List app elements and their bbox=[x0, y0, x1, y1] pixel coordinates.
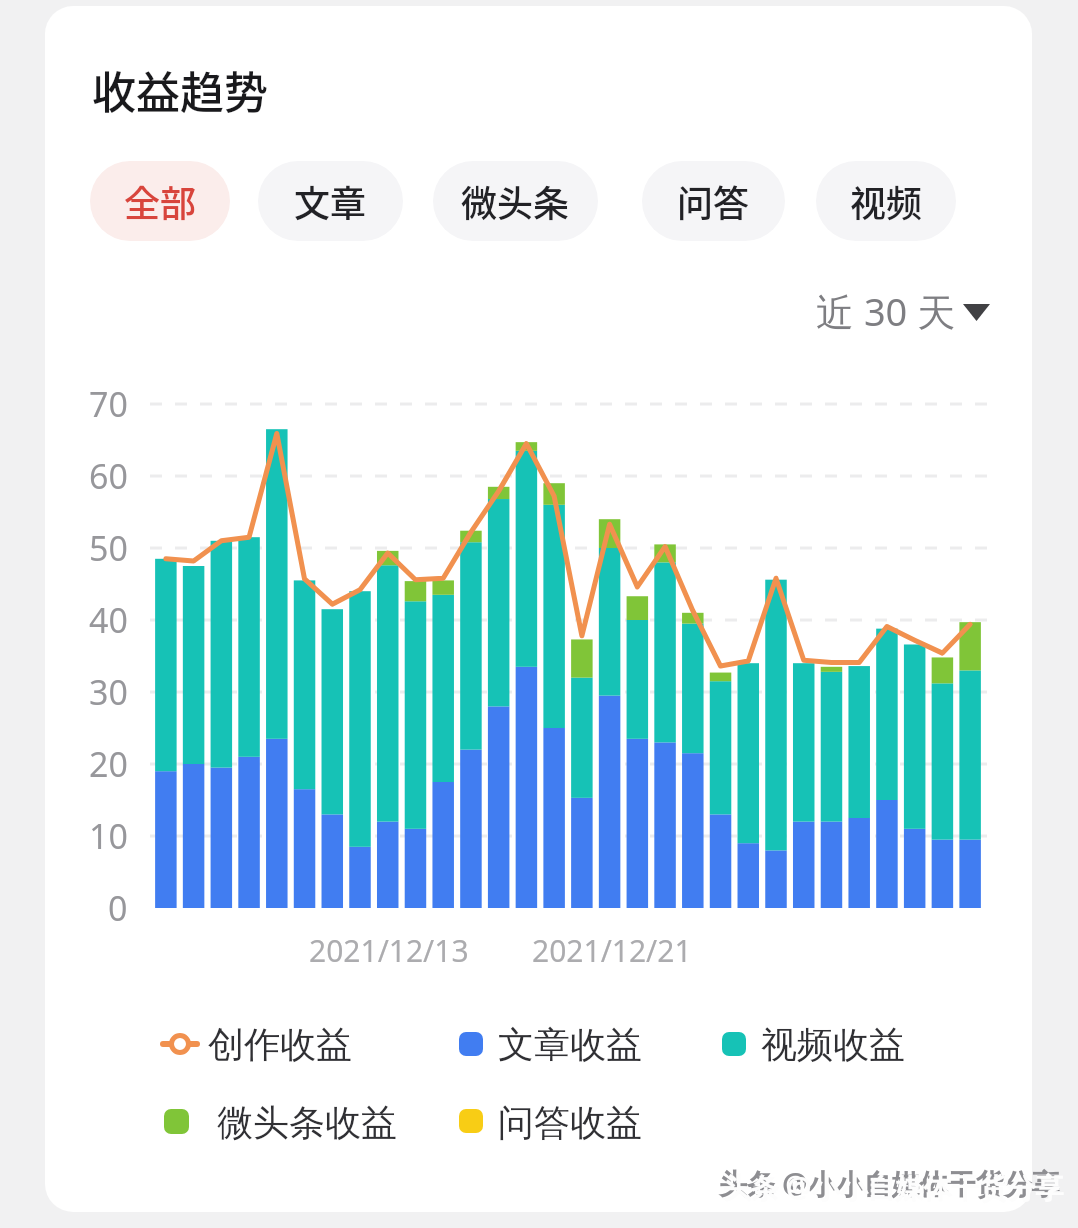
staticText: 40 bbox=[89, 597, 128, 643]
staticText: 收益趋势 bbox=[92, 58, 268, 122]
staticText: 文章收益 bbox=[498, 1022, 642, 1067]
staticText: 10 bbox=[89, 813, 128, 859]
staticText: 70 bbox=[89, 381, 128, 427]
staticText: 微头条收益 bbox=[217, 1100, 397, 1145]
staticText: 近 30 天 bbox=[816, 285, 956, 337]
button[interactable]: 视频 bbox=[816, 161, 956, 241]
staticText: 视频 bbox=[850, 175, 923, 227]
staticText: 2021/12/13 bbox=[309, 930, 469, 971]
staticText: 0 bbox=[108, 885, 128, 931]
staticText: 全部 bbox=[124, 175, 197, 227]
staticText: 头条 @小小自媒体干货分享 bbox=[719, 1164, 1060, 1202]
button[interactable]: 全部 bbox=[90, 161, 230, 241]
staticText: 头条 @小小自媒体干货分享 bbox=[723, 1168, 1064, 1206]
staticText: 30 bbox=[89, 669, 128, 715]
staticText: 文章 bbox=[294, 175, 367, 227]
staticText: 60 bbox=[89, 453, 128, 499]
staticText: 2021/12/21 bbox=[532, 930, 692, 971]
button[interactable]: 近 30 天 bbox=[800, 285, 1000, 337]
staticText: 问答 bbox=[677, 175, 750, 227]
staticText: 问答收益 bbox=[498, 1100, 642, 1145]
button[interactable]: 微头条 bbox=[433, 161, 598, 241]
staticText: 视频收益 bbox=[761, 1022, 905, 1067]
button[interactable]: 问答 bbox=[642, 161, 785, 241]
staticText: 20 bbox=[89, 741, 128, 787]
staticText: 微头条 bbox=[461, 175, 570, 227]
staticText: 50 bbox=[89, 525, 128, 571]
staticText: 创作收益 bbox=[208, 1022, 352, 1067]
button[interactable]: 文章 bbox=[258, 161, 403, 241]
